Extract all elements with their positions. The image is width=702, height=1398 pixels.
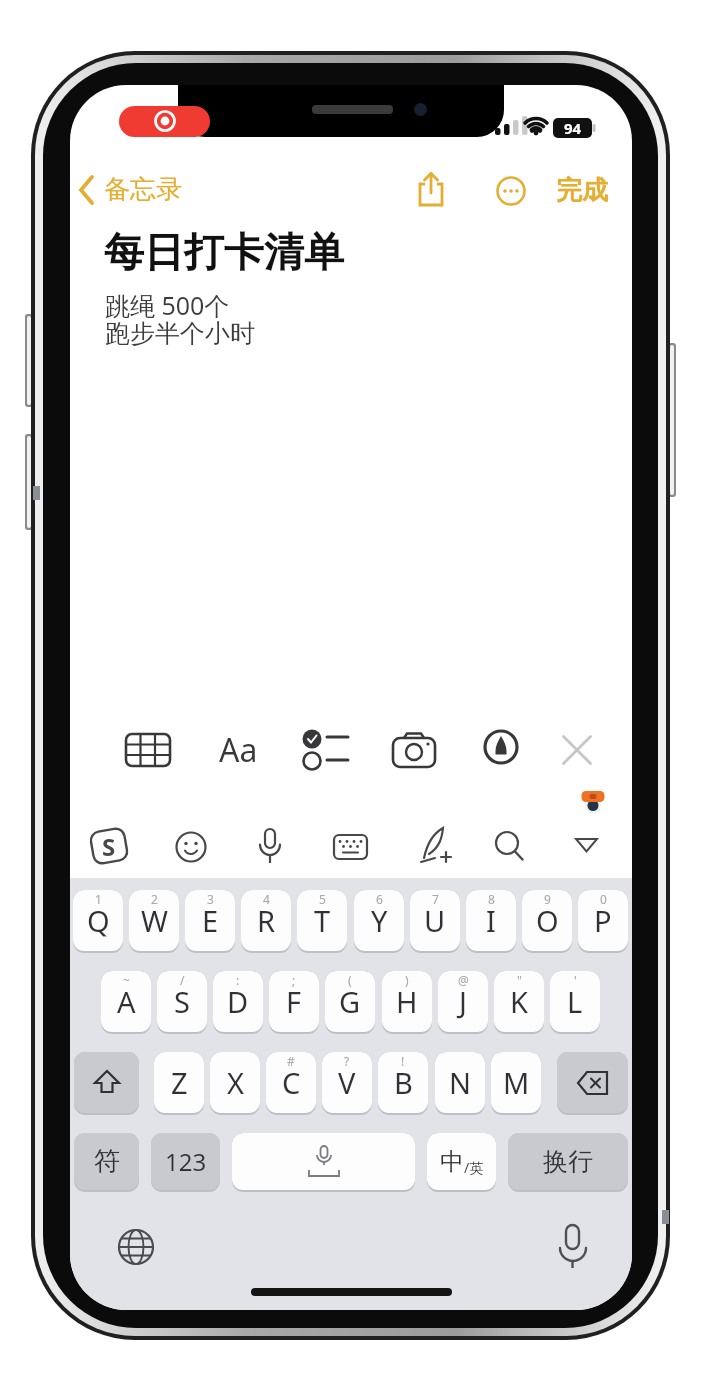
button[interactable]: I — [466, 890, 516, 953]
button[interactable]: N — [435, 1052, 485, 1115]
staticText: 9 — [544, 891, 551, 907]
button[interactable]: Y — [354, 890, 404, 953]
staticText: H — [396, 982, 418, 1021]
button[interactable]: Z — [154, 1052, 204, 1115]
staticText: Aa — [219, 728, 258, 772]
staticText: 中 — [440, 1147, 464, 1177]
button[interactable]: M — [491, 1052, 541, 1115]
button[interactable] — [495, 175, 527, 207]
staticText: 跑步半个小时 — [105, 318, 255, 349]
staticText: 完成 — [556, 174, 608, 207]
staticText: 1 — [95, 891, 102, 907]
staticText: /英 — [464, 1158, 484, 1177]
staticText: S — [174, 982, 190, 1021]
staticText: ' — [574, 972, 577, 988]
staticText: B — [394, 1063, 413, 1102]
button[interactable] — [391, 731, 437, 769]
button[interactable] — [74, 1052, 139, 1115]
button[interactable]: T — [297, 890, 347, 953]
staticText: W — [141, 901, 168, 940]
staticText: 5 — [319, 891, 326, 907]
button[interactable] — [119, 106, 210, 137]
button[interactable]: E — [185, 890, 235, 953]
button[interactable]: D — [213, 971, 263, 1034]
staticText: E — [202, 901, 219, 940]
staticText: @ — [458, 972, 469, 988]
button[interactable]: Q — [73, 890, 123, 953]
staticText: F — [286, 982, 302, 1021]
staticText: Q — [87, 901, 110, 940]
button[interactable]: W — [129, 890, 179, 953]
staticText: 4 — [263, 891, 270, 907]
staticText: A — [117, 982, 136, 1021]
staticText: 8 — [488, 891, 495, 907]
staticText: 0 — [600, 891, 607, 907]
staticText: 3 — [207, 891, 214, 907]
staticText: D — [227, 982, 249, 1021]
button[interactable]: S — [157, 971, 207, 1034]
button[interactable] — [562, 735, 592, 765]
staticText: 跳绳 500个 — [105, 288, 230, 322]
staticText: 7 — [432, 891, 439, 907]
button[interactable]: J — [438, 971, 488, 1034]
button[interactable]: Aa — [210, 725, 266, 775]
staticText: Z — [171, 1063, 188, 1102]
button[interactable]: 符 — [74, 1133, 139, 1192]
button[interactable]: R — [241, 890, 291, 953]
button[interactable] — [232, 1133, 415, 1192]
staticText: S — [102, 830, 116, 863]
button[interactable]: K — [494, 971, 544, 1034]
staticText: / — [180, 972, 185, 988]
button[interactable]: P — [578, 890, 628, 953]
button[interactable]: 换行 — [508, 1133, 628, 1192]
button[interactable]: L — [550, 971, 600, 1034]
button[interactable] — [257, 827, 283, 867]
staticText: V — [338, 1063, 356, 1102]
button[interactable]: G — [325, 971, 375, 1034]
button[interactable] — [115, 1226, 157, 1268]
staticText: 符 — [94, 1145, 120, 1178]
staticText: " — [517, 972, 522, 988]
staticText: U — [424, 901, 446, 940]
staticText: ! — [401, 1053, 405, 1069]
staticText: 123 — [165, 1145, 207, 1178]
button[interactable]: 备忘录 — [74, 169, 214, 211]
button[interactable] — [555, 1223, 591, 1271]
button[interactable] — [493, 830, 527, 864]
button[interactable]: V — [322, 1052, 372, 1115]
button[interactable] — [174, 830, 208, 864]
button[interactable] — [124, 731, 172, 769]
staticText: K — [510, 982, 528, 1021]
button[interactable]: O — [522, 890, 572, 953]
button[interactable] — [482, 728, 520, 766]
button[interactable]: U — [410, 890, 460, 953]
button[interactable] — [333, 834, 368, 860]
button[interactable]: 123 — [151, 1133, 220, 1192]
button[interactable]: A — [101, 971, 151, 1034]
staticText: G — [339, 982, 361, 1021]
staticText: 换行 — [543, 1146, 593, 1177]
button[interactable] — [574, 837, 599, 854]
staticText: : — [236, 972, 240, 988]
button[interactable] — [301, 728, 351, 772]
button[interactable] — [415, 171, 449, 209]
button[interactable]: X — [210, 1052, 260, 1115]
staticText: X — [227, 1063, 244, 1102]
staticText: 6 — [376, 891, 383, 907]
button[interactable]: 中 — [427, 1133, 496, 1192]
staticText: 每日打卡清单 — [104, 227, 344, 277]
button[interactable]: C — [266, 1052, 316, 1115]
staticText: O — [536, 901, 559, 940]
button[interactable] — [557, 1052, 628, 1115]
button[interactable] — [415, 824, 455, 868]
button[interactable]: S — [87, 825, 131, 867]
button[interactable]: F — [269, 971, 319, 1034]
button[interactable]: B — [378, 1052, 428, 1115]
staticText: ? — [344, 1053, 350, 1069]
staticText: 备忘录 — [104, 173, 182, 206]
button[interactable]: 完成 — [545, 169, 619, 211]
staticText: ) — [405, 972, 409, 988]
staticText: Y — [371, 901, 388, 940]
staticText: J — [459, 982, 467, 1021]
button[interactable]: H — [382, 971, 432, 1034]
